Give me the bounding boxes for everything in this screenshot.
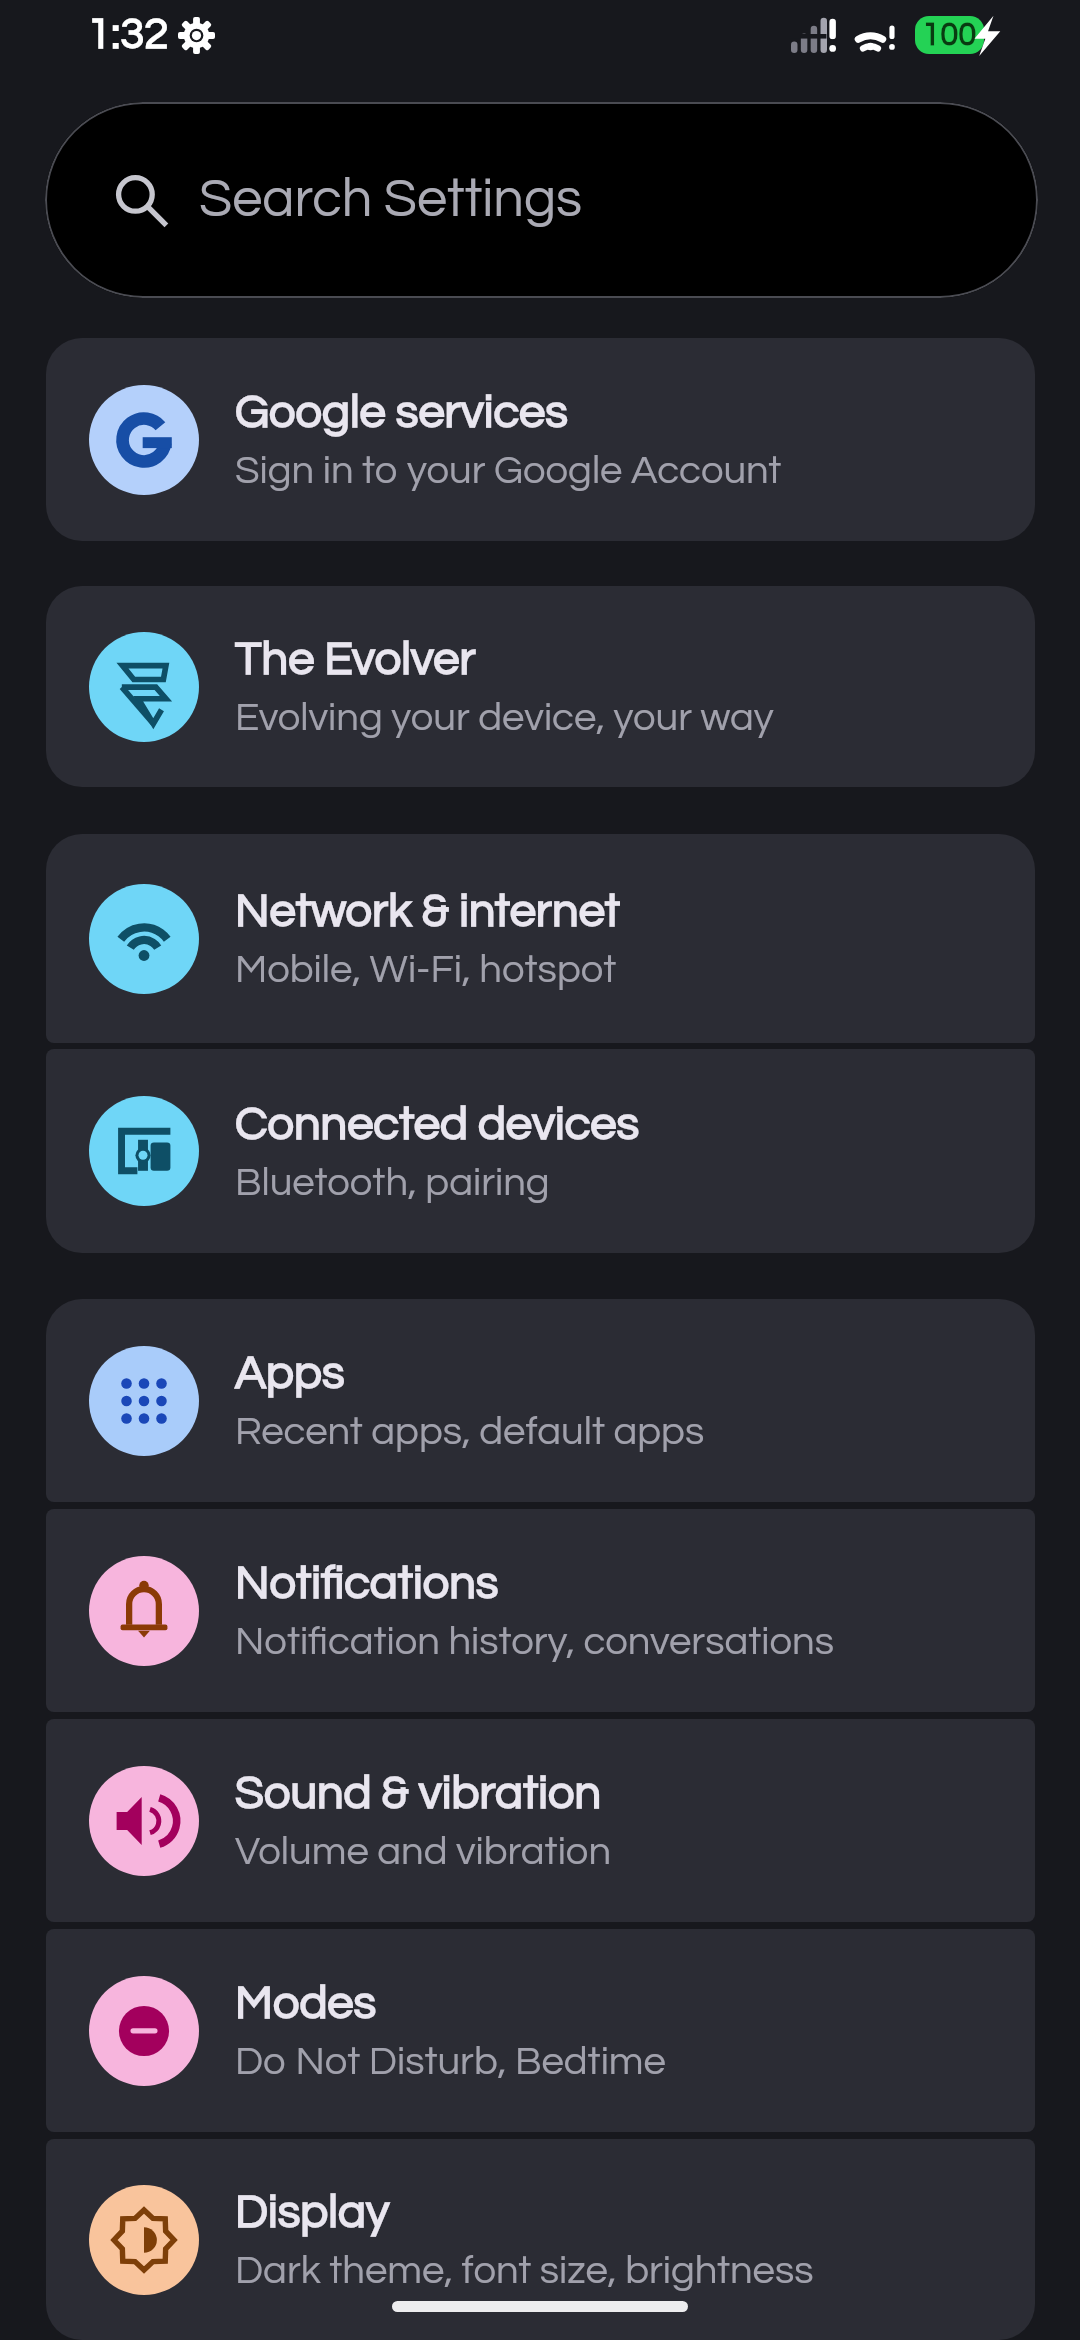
button[interactable]: Connected devices [46, 1049, 1035, 1253]
button[interactable]: Sound & vibration [46, 1719, 1035, 1922]
button[interactable]: Search Settings [45, 102, 1038, 298]
staticText: Sound & vibration [235, 1769, 602, 1817]
staticText: Apps [235, 1349, 345, 1397]
staticText: The Evolver [235, 635, 476, 683]
staticText: Modes [235, 1979, 377, 2027]
staticText: Evolving your device, your way [235, 697, 774, 738]
button[interactable]: The Evolver [46, 586, 1035, 787]
button[interactable]: Notifications [46, 1509, 1035, 1712]
staticText: 1:32 [87, 12, 169, 57]
staticText: Connected devices [235, 1100, 640, 1148]
staticText: Google services [235, 388, 568, 436]
staticText: Notifications [235, 1559, 499, 1607]
button[interactable]: Google services [46, 338, 1035, 541]
staticText: Notification history, conversations [235, 1621, 834, 1662]
button[interactable]: Modes [46, 1929, 1035, 2132]
staticText: 100 [922, 18, 977, 52]
staticText: Dark theme, font size, brightness [235, 2250, 814, 2291]
button[interactable]: Network & internet [46, 834, 1035, 1043]
staticText: Network & internet [235, 887, 621, 935]
staticText: Volume and vibration [235, 1831, 612, 1872]
staticText: Sign in to your Google Account [235, 450, 782, 491]
staticText: Search Settings [199, 172, 583, 228]
button[interactable]: Apps [46, 1299, 1035, 1502]
button[interactable]: Display [46, 2139, 1035, 2340]
staticText: Recent apps, default apps [235, 1411, 705, 1452]
staticText: Do Not Disturb, Bedtime [235, 2041, 666, 2082]
staticText: Display [235, 2188, 390, 2236]
staticText: Mobile, Wi-Fi, hotspot [235, 949, 617, 990]
staticText: Bluetooth, pairing [235, 1162, 550, 1203]
